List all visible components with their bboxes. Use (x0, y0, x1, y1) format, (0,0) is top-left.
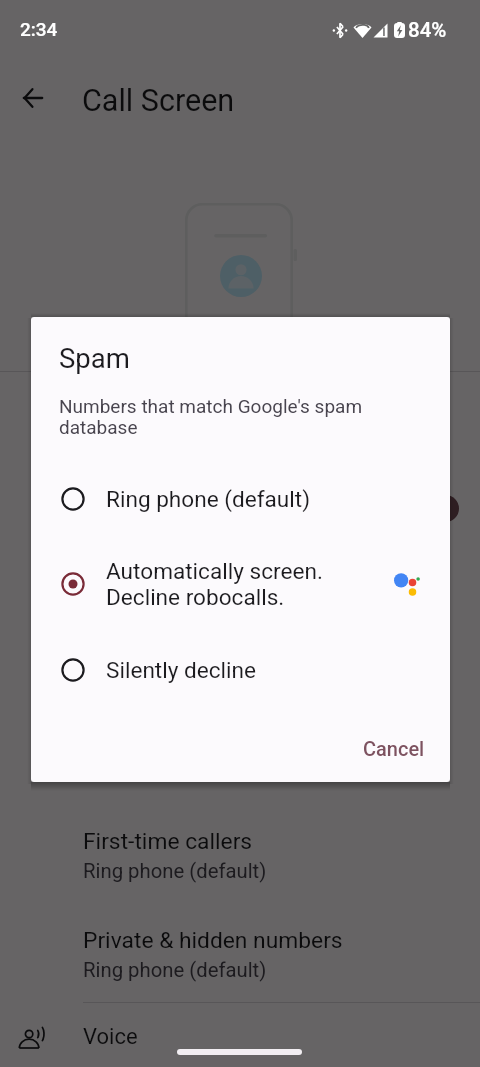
staticText: Ring phone (default) (83, 859, 267, 883)
button[interactable]: Automatically screen. Decline robocalls. (31, 554, 450, 614)
staticText: Cancel (363, 737, 425, 760)
staticText: 84% (408, 18, 447, 42)
staticText: Private & hidden numbers (83, 927, 343, 954)
staticText: Call Screen (82, 83, 235, 119)
staticText: Silently decline (106, 657, 257, 683)
staticText: Spam (59, 342, 130, 374)
button[interactable]: Add (432, 495, 459, 522)
other: Voice (17, 1024, 45, 1050)
button[interactable]: Back (11, 76, 55, 120)
staticText: Numbers that match Google's spam databas… (59, 395, 404, 438)
button[interactable]: Private & hidden numbers (0, 927, 480, 982)
button[interactable]: Silently decline (31, 640, 450, 700)
staticText: Ring phone (default) (83, 958, 267, 982)
button[interactable]: Ring phone (default) (31, 469, 450, 529)
button[interactable] (0, 1003, 480, 1067)
button[interactable]: Cancel (350, 729, 438, 768)
staticText: Automatically screen. Decline robocalls. (106, 558, 323, 610)
staticText: 2:34 (20, 18, 58, 40)
staticText: Ring phone (default) (106, 486, 311, 512)
staticText: First-time callers (83, 828, 253, 855)
other: Google Assistant (394, 573, 422, 601)
staticText: Voice (83, 1024, 138, 1050)
button[interactable]: First-time callers (0, 828, 480, 883)
